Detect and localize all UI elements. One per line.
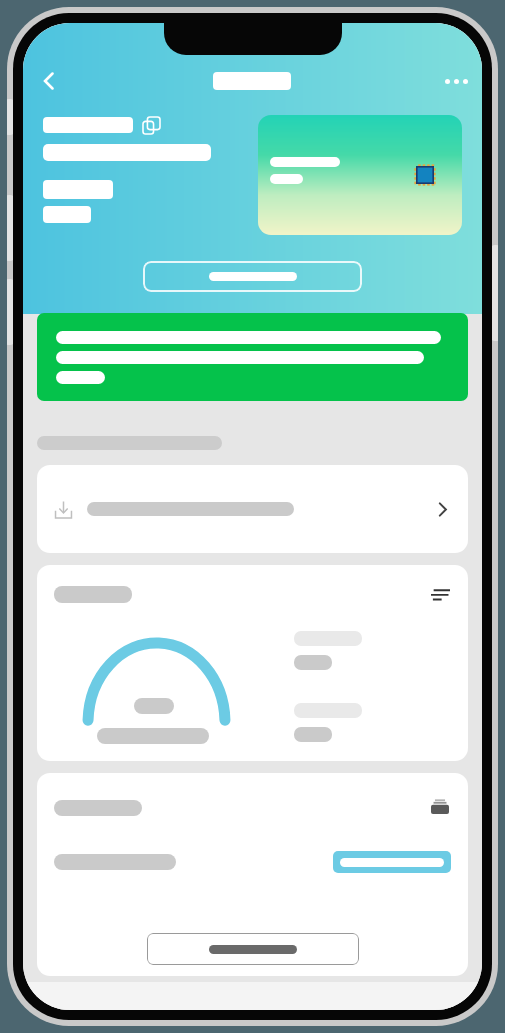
button[interactable]: More options <box>436 61 476 101</box>
button[interactable]: Filter <box>429 583 451 605</box>
button[interactable]: Wallet <box>37 773 468 976</box>
button[interactable]: Filter <box>37 565 468 761</box>
button[interactable] <box>258 115 462 235</box>
button[interactable] <box>37 465 468 553</box>
button[interactable]: Back <box>29 61 69 101</box>
button[interactable] <box>147 933 359 965</box>
button[interactable]: Copy <box>141 115 161 135</box>
button[interactable] <box>143 261 362 292</box>
button[interactable] <box>37 313 468 401</box>
button[interactable]: Wallet <box>429 797 451 819</box>
button[interactable] <box>333 851 451 873</box>
